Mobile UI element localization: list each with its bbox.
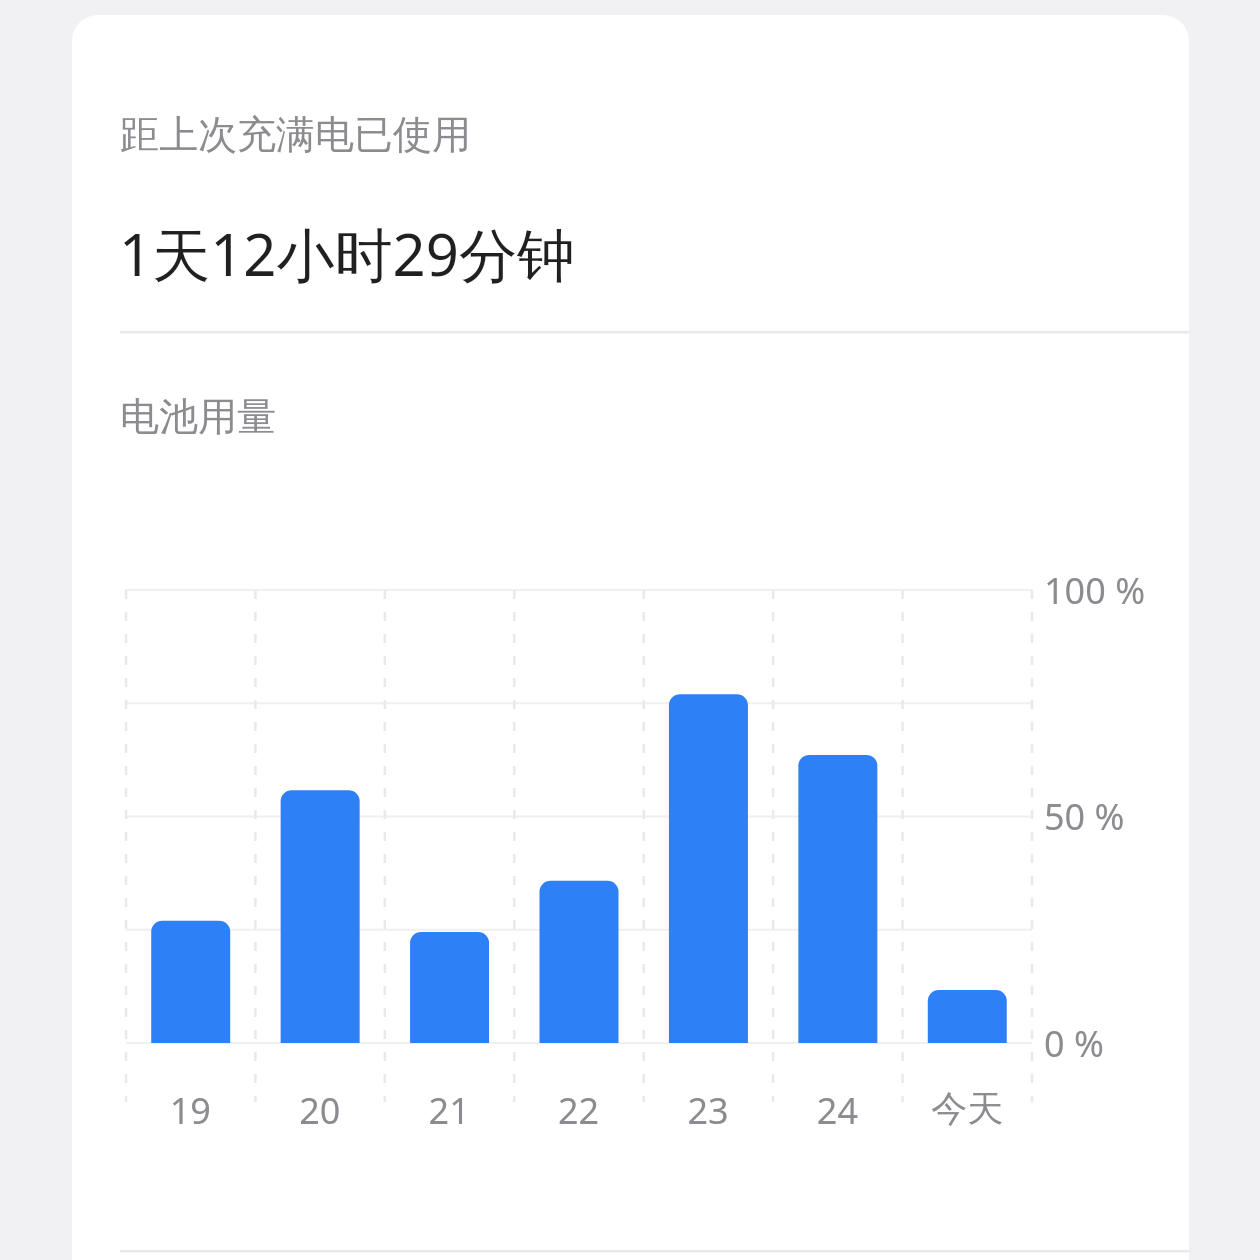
button[interactable] <box>72 15 1189 1260</box>
other: Battery usage since last full charge <box>0 0 1260 1260</box>
